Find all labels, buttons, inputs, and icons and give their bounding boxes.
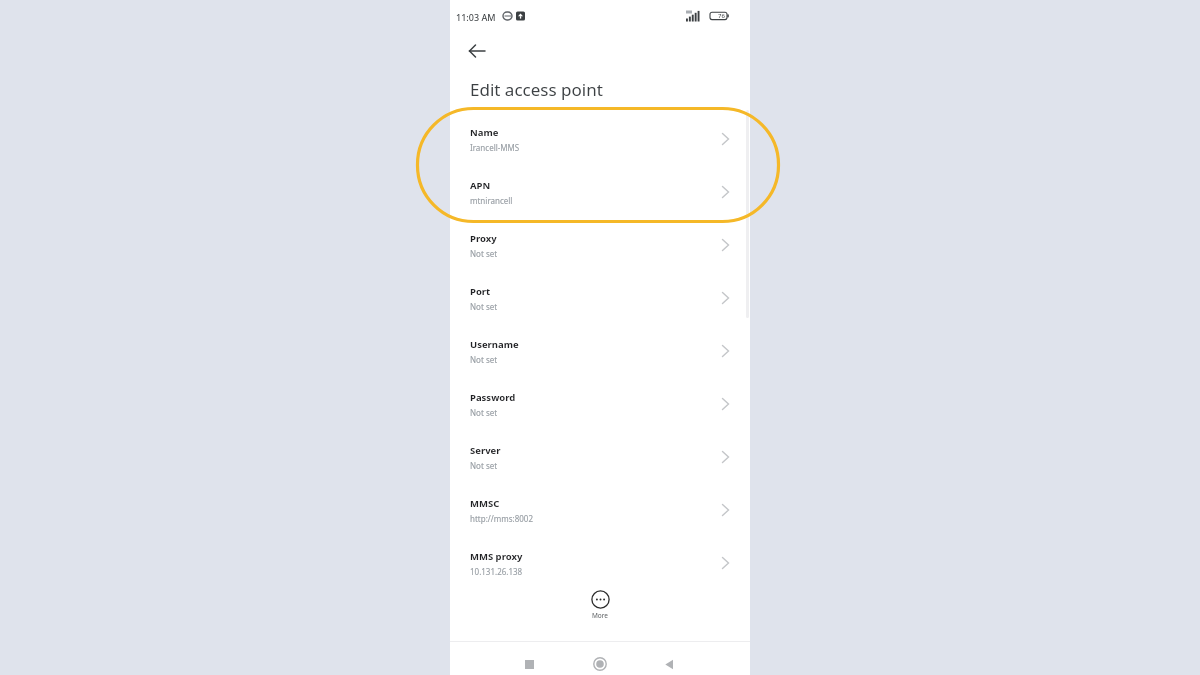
staticText: Proxy	[470, 232, 497, 245]
button[interactable]: Home	[584, 648, 616, 675]
button[interactable]: MMS proxy	[450, 544, 750, 597]
staticText: Irancell-MMS	[470, 142, 520, 153]
button[interactable]: Recent apps	[513, 648, 545, 675]
staticText: Not set	[470, 354, 498, 365]
button[interactable]: APN	[450, 173, 750, 226]
staticText: Server	[470, 444, 501, 457]
staticText: 10.131.26.138	[470, 566, 523, 577]
button[interactable]: Proxy	[450, 226, 750, 279]
button[interactable]: Server	[450, 438, 750, 491]
button[interactable]: More	[576, 590, 624, 620]
staticText: Name	[470, 126, 499, 139]
staticText: Not set	[470, 460, 498, 471]
button[interactable]: Name	[450, 120, 750, 173]
staticText: Password	[470, 391, 516, 404]
staticText: Not set	[470, 407, 498, 418]
staticText: http://mms:8002	[470, 513, 533, 524]
staticText: More	[576, 611, 624, 620]
staticText: 11:03 AM	[456, 11, 496, 23]
staticText: Port	[470, 285, 491, 298]
button[interactable]: Back	[459, 33, 495, 69]
staticText: Username	[470, 338, 519, 351]
staticText: MMSC	[470, 497, 500, 510]
staticText: Edit access point	[470, 78, 603, 101]
staticText: 76	[718, 12, 725, 20]
staticText: APN	[470, 179, 491, 192]
staticText: Not set	[470, 248, 498, 259]
button[interactable]: Password	[450, 385, 750, 438]
button[interactable]: Username	[450, 332, 750, 385]
button[interactable]: MMSC	[450, 491, 750, 544]
button[interactable]: Port	[450, 279, 750, 332]
staticText: mtnirancell	[470, 195, 513, 206]
staticText: MMS proxy	[470, 550, 523, 563]
button[interactable]: Back	[653, 648, 685, 675]
staticText: Not set	[470, 301, 498, 312]
